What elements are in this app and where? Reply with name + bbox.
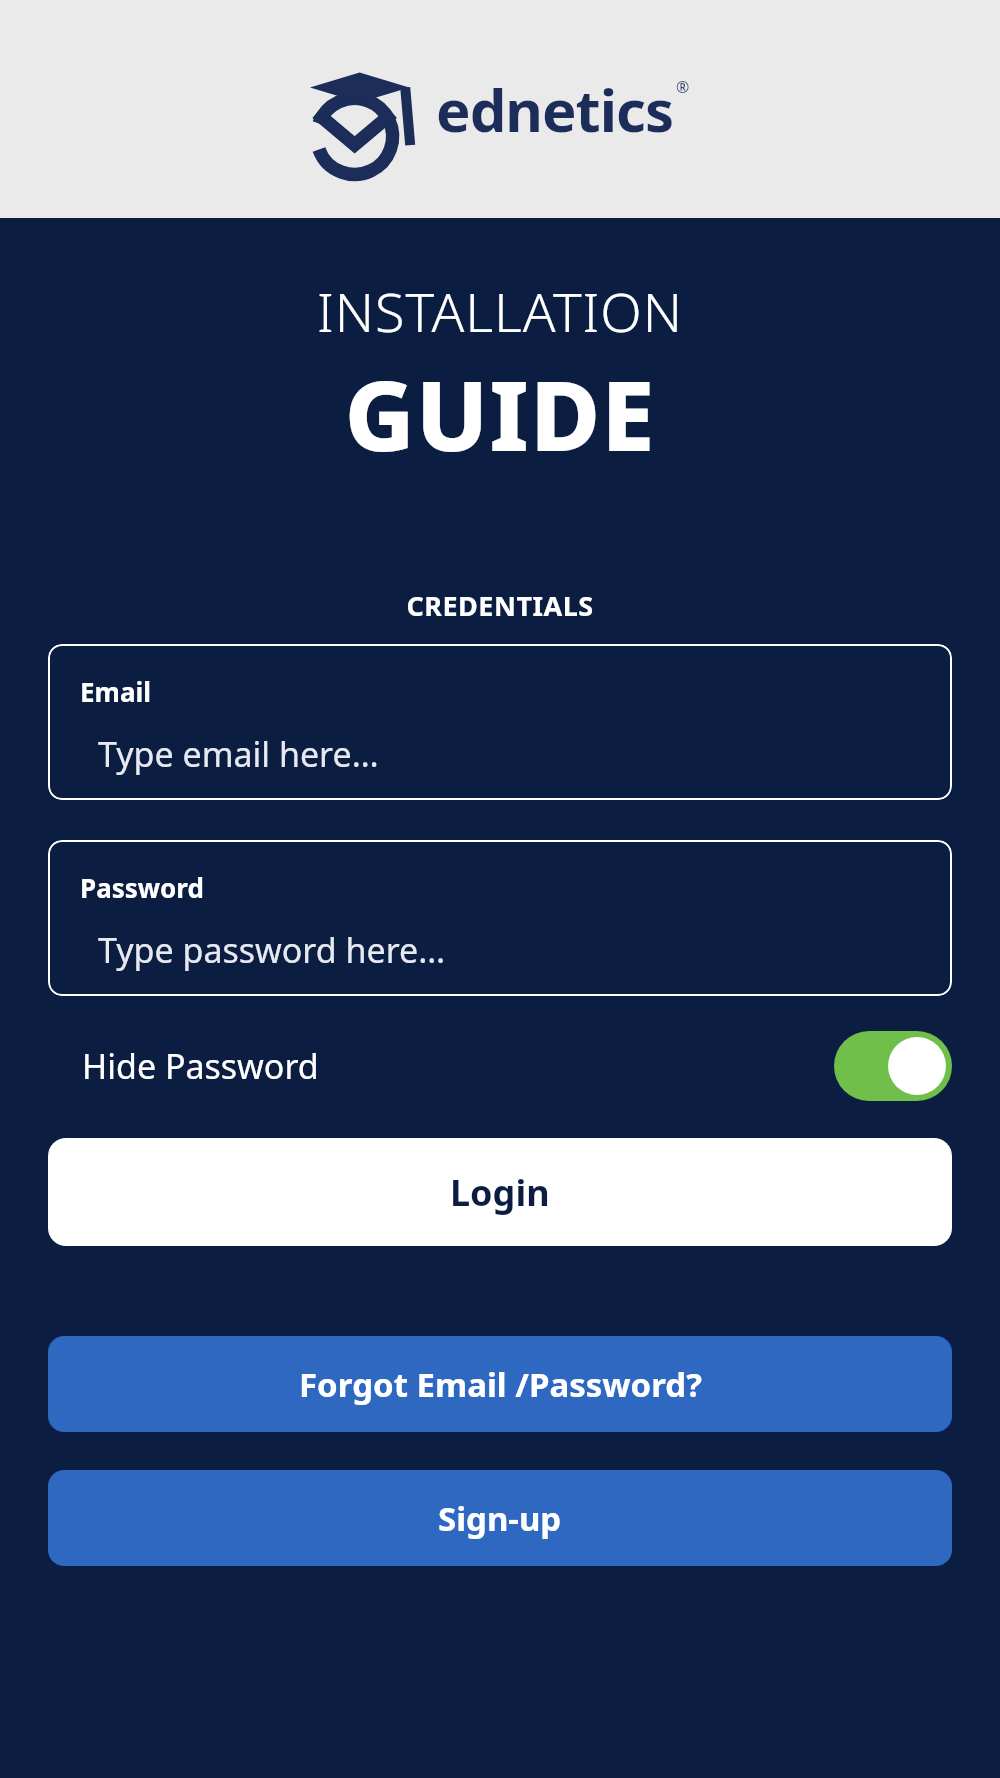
button[interactable]: Hide Password (48, 1026, 952, 1106)
button[interactable]: Forgot Email /Password? (48, 1336, 952, 1432)
staticText: Email (80, 674, 152, 709)
staticText: Type email here… (98, 731, 379, 777)
staticText: Sign-up (438, 1496, 562, 1541)
staticText: INSTALLATION (0, 274, 1000, 348)
staticText: ® (676, 76, 690, 98)
staticText: Hide Password (82, 1043, 319, 1089)
button[interactable]: Email (48, 644, 952, 800)
staticText: Password (80, 870, 204, 905)
staticText: Login (450, 1168, 550, 1217)
staticText: Forgot Email /Password? (299, 1362, 702, 1407)
staticText: GUIDE (0, 348, 1000, 479)
staticText: CREDENTIALS (0, 587, 1000, 624)
button[interactable]: Hide Password toggle (834, 1031, 952, 1101)
button[interactable]: Login (48, 1138, 952, 1246)
staticText: Type password here… (98, 927, 446, 973)
button[interactable]: Password (48, 840, 952, 996)
staticText: ednetics (436, 70, 674, 149)
button[interactable]: Sign-up (48, 1470, 952, 1566)
